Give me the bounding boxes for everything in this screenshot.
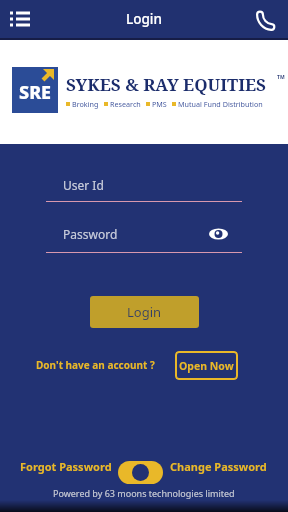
staticText: Powered by 63 moons technologies limited [53,487,235,499]
staticText: Login [127,303,162,321]
button[interactable]: Login [90,296,199,328]
button[interactable]: Open Now [175,351,238,380]
staticText: SYKES & RAY EQUITIES [66,73,266,96]
staticText: Mutual Fund Distribution [178,99,263,109]
button[interactable] [118,461,163,484]
button[interactable] [6,5,34,33]
staticText: PMS [152,99,167,109]
staticText: Login [126,10,162,28]
button[interactable]: Forgot Password [20,459,112,474]
staticText: Password [63,226,118,242]
button[interactable]: Change Password [170,459,267,474]
staticText: Open Now [179,359,234,373]
staticText: User Id [63,177,104,193]
staticText: Broking [72,99,99,109]
button[interactable] [254,5,282,33]
staticText: TM [277,74,285,81]
staticText: Research [110,99,141,109]
staticText: SRE [19,80,52,105]
staticText: Don't have an account ? [36,358,155,372]
